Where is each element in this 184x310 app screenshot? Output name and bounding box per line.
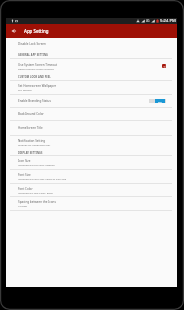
button[interactable]: ON — [149, 99, 166, 103]
staticText: Application's Font Size: Same as Icon Si… — [18, 177, 67, 180]
staticText: 4G — [146, 19, 150, 23]
staticText: Icon Size — [18, 159, 31, 163]
staticText: Font Color — [18, 187, 33, 191]
staticText: BackGround Color — [18, 112, 44, 116]
button[interactable]: Spacing between the Icons — [6, 197, 177, 210]
button[interactable]: HomeScreen Title — [6, 121, 177, 135]
button[interactable]: Set Homescreen Wallpaper — [6, 81, 177, 94]
button[interactable]: Use System Screen Timeout — [6, 59, 177, 73]
button[interactable]: Font Size — [6, 170, 177, 183]
staticText: 5:24 PM — [160, 18, 176, 24]
staticText: Font Size — [18, 173, 31, 177]
button[interactable]: Icon Size — [6, 156, 177, 169]
staticText: Application's Title Color: Black — [18, 191, 53, 194]
button[interactable]: Disable Lock Screen — [6, 38, 177, 50]
staticText: App Setting — [24, 28, 49, 34]
staticText: Use System Screen Timeout — [18, 63, 58, 67]
staticText: 10 pixel — [18, 204, 28, 207]
button[interactable]: Font Color — [6, 184, 177, 196]
staticText: Settings for notification bar — [18, 143, 51, 146]
button[interactable]: Notification Setting — [6, 136, 177, 149]
staticText: CUSTOM LOOK AND FEEL — [18, 75, 51, 78]
staticText: Application's Icon Size: Medium — [18, 163, 55, 166]
button[interactable]: BackGround Color — [6, 108, 177, 120]
button[interactable]: Enable Branding Status — [6, 95, 177, 107]
button[interactable]: Navigate up — [6, 24, 21, 38]
staticText: Enable Branding Status — [18, 99, 51, 103]
staticText: GENERAL APP SETTING — [18, 53, 48, 56]
staticText: Set Homescreen Wallpaper — [18, 84, 57, 88]
staticText: Spacing between the Icons — [18, 200, 56, 204]
staticText: Notification Setting — [18, 139, 46, 143]
staticText: HomeScreen Title — [18, 126, 43, 130]
staticText: Default Device Screen Timeout — [18, 67, 54, 70]
staticText: ON — [158, 100, 162, 103]
staticText: Disable Lock Screen — [18, 42, 46, 46]
staticText: Pro Feature — [18, 88, 32, 91]
staticText: DISPLAY SETTINGS — [18, 151, 43, 154]
